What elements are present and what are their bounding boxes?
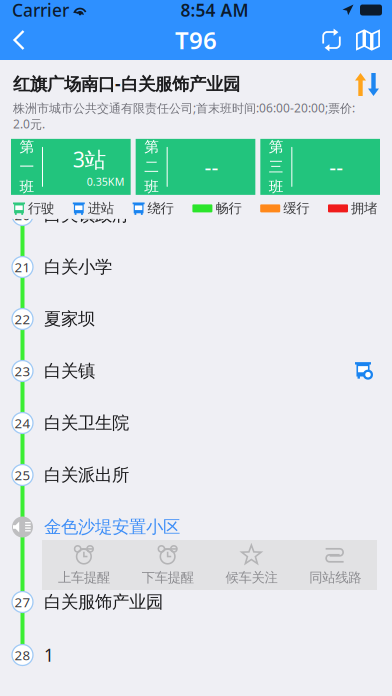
- staticText: 红旗广场南口-白关服饰产业园: [13, 72, 240, 95]
- staticText: Carrier: [12, 0, 69, 21]
- staticText: 下车提醒: [142, 569, 194, 586]
- button[interactable]: 第: [11, 139, 131, 195]
- button[interactable]: 同站线路: [293, 540, 377, 590]
- staticText: 候车关注: [225, 569, 277, 586]
- button[interactable]: 27: [0, 576, 392, 628]
- staticText: 25: [14, 466, 30, 484]
- button[interactable]: 上车提醒: [42, 540, 126, 590]
- button[interactable]: 第: [136, 139, 255, 195]
- staticText: 24: [14, 414, 30, 432]
- button[interactable]: 22: [0, 293, 392, 345]
- staticText: 拥堵: [351, 200, 377, 217]
- staticText: 第: [144, 138, 159, 156]
- staticText: 第: [19, 138, 34, 156]
- staticText: 白关镇政府: [44, 204, 129, 226]
- staticText: 21: [14, 258, 30, 276]
- staticText: 白关小学: [44, 256, 112, 278]
- button[interactable]: 23: [0, 345, 392, 397]
- button[interactable]: Refresh: [313, 20, 350, 60]
- staticText: 畅行: [215, 200, 241, 217]
- staticText: 23: [14, 362, 30, 380]
- staticText: 一: [19, 158, 34, 176]
- button[interactable]: 24: [0, 397, 392, 449]
- staticText: 行驶: [28, 200, 54, 217]
- staticText: 白关服饰产业园: [44, 591, 163, 613]
- staticText: 班: [19, 178, 34, 196]
- staticText: 1: [44, 643, 54, 666]
- staticText: 绕行: [148, 200, 174, 217]
- button[interactable]: 金色沙堤安置小区: [0, 501, 392, 553]
- staticText: 班: [144, 178, 159, 196]
- staticText: 8:54 AM: [180, 0, 248, 21]
- button[interactable]: 第: [260, 139, 380, 195]
- staticText: 0.35KM: [87, 174, 125, 189]
- staticText: 白关派出所: [44, 464, 129, 486]
- staticText: 三: [269, 158, 284, 176]
- button[interactable]: 候车关注: [209, 540, 293, 590]
- button[interactable]: Reverse direction: [347, 72, 383, 97]
- staticText: 20: [14, 206, 30, 224]
- staticText: 白关镇: [44, 360, 95, 382]
- button[interactable]: Map: [350, 20, 392, 60]
- staticText: 28: [14, 646, 30, 664]
- staticText: 株洲市城市公共交通有限责任公司;首末班时间:06:00-20:00;票价:2.0…: [13, 100, 355, 132]
- button[interactable]: 28: [0, 629, 392, 681]
- staticText: --: [329, 153, 343, 181]
- button[interactable]: 25: [0, 449, 392, 501]
- staticText: 金色沙堤安置小区: [44, 516, 180, 538]
- staticText: 二: [144, 158, 159, 176]
- staticText: T96: [175, 24, 217, 56]
- staticText: 夏家坝: [44, 308, 95, 330]
- button[interactable]: 20: [0, 189, 392, 241]
- staticText: 22: [14, 310, 30, 328]
- button[interactable]: 下车提醒: [126, 540, 210, 590]
- staticText: --: [204, 153, 218, 181]
- button[interactable]: 21: [0, 241, 392, 293]
- button[interactable]: Back: [0, 20, 39, 60]
- staticText: 缓行: [283, 200, 309, 217]
- staticText: 进站: [88, 200, 114, 217]
- staticText: 27: [14, 593, 30, 611]
- staticText: 白关卫生院: [44, 412, 129, 434]
- staticText: 3站: [73, 145, 106, 173]
- staticText: 班: [269, 178, 284, 196]
- staticText: 第: [269, 138, 284, 156]
- staticText: 同站线路: [309, 569, 361, 586]
- staticText: 上车提醒: [58, 569, 110, 586]
